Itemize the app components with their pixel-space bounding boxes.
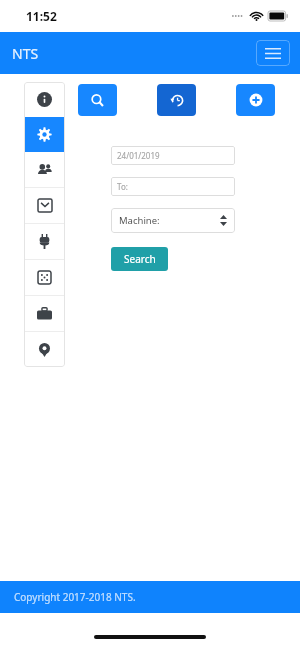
button[interactable]: Inbox bbox=[24, 188, 65, 223]
button[interactable]: Machine: bbox=[111, 208, 235, 233]
button[interactable]: Search bbox=[111, 247, 168, 271]
button[interactable]: Add bbox=[236, 84, 275, 116]
button[interactable]: Info bbox=[24, 82, 65, 117]
button[interactable]: Dice bbox=[24, 260, 65, 295]
button[interactable]: Search bbox=[78, 84, 117, 116]
staticText: Search bbox=[124, 252, 156, 266]
staticText: NTS bbox=[12, 44, 39, 63]
button[interactable]: Menu bbox=[256, 40, 290, 66]
button[interactable]: 24/01/2019 bbox=[111, 146, 235, 165]
staticText: 24/01/2019 bbox=[117, 150, 160, 161]
button[interactable]: Settings bbox=[24, 117, 65, 152]
button[interactable]: Location bbox=[24, 332, 65, 367]
button[interactable]: History bbox=[157, 84, 196, 116]
staticText: To: bbox=[117, 181, 128, 192]
button[interactable]: To: bbox=[111, 177, 235, 196]
button[interactable]: Users bbox=[24, 152, 65, 187]
staticText: Copyright 2017-2018 NTS. bbox=[14, 590, 136, 604]
staticText: Machine: bbox=[119, 214, 160, 227]
button[interactable]: Jobs bbox=[24, 296, 65, 331]
button[interactable]: Power bbox=[24, 224, 65, 259]
staticText: 11:52 bbox=[26, 8, 57, 24]
